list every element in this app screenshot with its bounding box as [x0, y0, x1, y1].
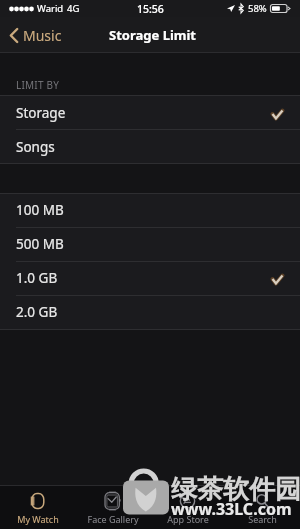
- staticText: 15:56: [137, 2, 164, 16]
- staticText: Songs: [16, 138, 55, 156]
- staticText: My Watch: [17, 513, 59, 525]
- staticText: Storage Limit: [109, 26, 196, 44]
- button[interactable]: App Store: [150, 486, 225, 529]
- button[interactable]: Music: [10, 20, 62, 50]
- staticText: 绿茶软件园: [171, 473, 300, 506]
- button[interactable]: My Watch: [0, 486, 75, 529]
- button[interactable]: 2.0 GB: [0, 296, 300, 330]
- staticText: Storage: [16, 104, 66, 122]
- staticText: 2.0 GB: [16, 303, 58, 321]
- staticText: www.33LC.com: [171, 498, 292, 520]
- staticText: 100 MB: [16, 201, 64, 219]
- button[interactable]: Search: [225, 486, 300, 529]
- staticText: 1.0 GB: [16, 269, 58, 287]
- button[interactable]: Songs: [0, 130, 300, 164]
- staticText: 500 MB: [16, 235, 64, 253]
- staticText: Face Gallery: [87, 513, 139, 525]
- staticText: App Store: [167, 513, 209, 525]
- button[interactable]: 1.0 GB: [0, 262, 300, 296]
- staticText: Music: [23, 26, 62, 45]
- staticText: Search: [248, 513, 277, 525]
- staticText: 4G: [67, 2, 80, 15]
- staticText: Warid: [37, 2, 64, 15]
- staticText: 58%: [248, 2, 267, 15]
- button[interactable]: Storage: [0, 96, 300, 130]
- staticText: LIMIT BY: [16, 78, 60, 92]
- button[interactable]: 100 MB: [0, 194, 300, 228]
- button[interactable]: 500 MB: [0, 228, 300, 262]
- button[interactable]: Face Gallery: [75, 486, 150, 529]
